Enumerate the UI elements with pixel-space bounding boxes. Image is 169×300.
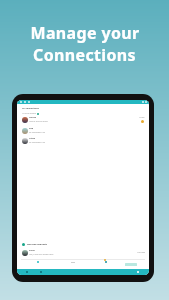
button[interactable]: Latifa xyxy=(17,135,149,146)
button[interactable]: Sarah xyxy=(17,247,149,258)
staticText: Connections xyxy=(33,44,136,66)
staticText: Hey, I saw your profile here xyxy=(29,253,54,256)
staticText: All Connections xyxy=(22,107,39,110)
staticText: 12:05 xyxy=(139,116,145,119)
staticText: Latifa xyxy=(29,137,36,140)
staticText: Message Requests xyxy=(27,243,48,246)
staticText: So messaged u lol xyxy=(29,131,46,134)
staticText: So messaged u lol xyxy=(29,141,46,144)
staticText: Sarah xyxy=(29,249,35,252)
button[interactable]: Alonso xyxy=(17,114,149,125)
staticText: 12 of 20 online xyxy=(22,112,36,115)
button[interactable]: Gab xyxy=(17,125,149,136)
staticText: Nice to see you back! xyxy=(29,120,48,123)
staticText: Alonso xyxy=(29,116,37,119)
staticText: Manage your xyxy=(30,22,140,44)
staticText: Gab xyxy=(29,127,34,130)
staticText: 10h ago xyxy=(137,251,145,254)
